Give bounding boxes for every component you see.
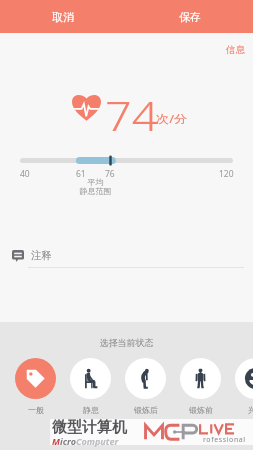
staticText: 40	[20, 168, 30, 180]
staticText: 次/分	[156, 111, 188, 126]
other: 静息	[70, 358, 111, 399]
button[interactable]: 兴奋	[228, 358, 253, 415]
button[interactable]: 信息	[226, 44, 245, 56]
other: 锻炼后	[125, 358, 166, 399]
button[interactable]: 锻炼后	[118, 358, 173, 415]
other: 锻炼前	[180, 358, 221, 399]
staticText: 61	[76, 168, 86, 180]
staticText: 信息	[226, 44, 245, 56]
other: 一般	[15, 358, 56, 399]
staticText: 静息范围	[0, 186, 191, 196]
button[interactable]: 一般	[8, 358, 63, 415]
staticText: 微型计算机	[52, 418, 127, 437]
other: 兴奋	[235, 358, 253, 399]
button[interactable]: 注释	[12, 244, 245, 268]
staticText: 保存	[179, 10, 201, 24]
button[interactable]: 取消	[0, 0, 126, 33]
staticText: 取消	[52, 10, 74, 24]
staticText: 选择当前状态	[0, 337, 253, 348]
button[interactable]: 静息	[63, 358, 118, 415]
staticText: M	[52, 435, 60, 447]
staticText: icro	[60, 435, 76, 447]
staticText: 兴奋	[248, 405, 253, 415]
button[interactable]: 保存	[126, 0, 253, 33]
staticText: 平均	[0, 177, 191, 187]
staticText: 76	[105, 168, 115, 180]
staticText: rofessional	[203, 435, 246, 445]
staticText: 注释	[31, 249, 52, 262]
staticText: Computer	[76, 435, 119, 447]
staticText: 一般	[28, 405, 44, 415]
staticText: 120	[219, 168, 234, 180]
staticText: 74	[105, 88, 159, 142]
staticText: 锻炼前	[189, 405, 213, 415]
button[interactable]: 锻炼前	[173, 358, 228, 415]
staticText: 锻炼后	[134, 405, 158, 415]
staticText: 静息	[83, 405, 99, 415]
